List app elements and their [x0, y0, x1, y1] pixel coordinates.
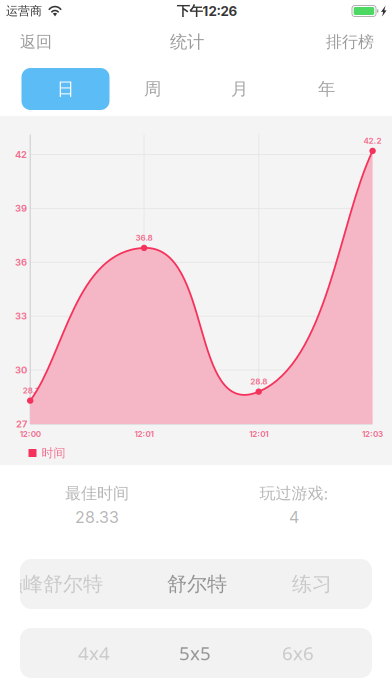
staticText: 运营商	[6, 3, 42, 18]
staticText: 12:01	[249, 429, 268, 439]
staticText: 4	[289, 507, 299, 527]
staticText: 42	[15, 149, 27, 160]
button[interactable]: 4x4	[20, 628, 372, 678]
staticText: 36.8	[136, 233, 153, 243]
staticText: 周	[144, 78, 161, 100]
staticText: 28.33	[75, 507, 119, 527]
button[interactable]: 返回	[0, 22, 64, 62]
staticText: 42.2	[364, 136, 382, 146]
staticText: 30	[15, 364, 27, 376]
staticText: 日	[57, 78, 74, 100]
staticText: 27	[16, 418, 27, 430]
staticText: 28.8	[250, 377, 267, 386]
button[interactable]: 年	[283, 62, 370, 116]
staticText: 12:03	[362, 429, 383, 439]
button[interactable]: 日	[22, 62, 109, 116]
staticText: 玩过游戏:	[259, 483, 328, 503]
staticText: 12:00	[20, 429, 41, 439]
staticText: 33	[15, 311, 27, 322]
staticText: 下午12:26	[176, 3, 237, 19]
staticText: 12:01	[135, 429, 154, 439]
button[interactable]: 排行榜	[314, 22, 392, 62]
staticText: 4x4	[78, 640, 110, 666]
staticText: 月	[231, 78, 248, 100]
staticText: 统计	[170, 31, 204, 53]
staticText: 年	[318, 78, 335, 100]
staticText: 排行榜	[326, 32, 374, 52]
staticText: 舒尔特	[167, 571, 227, 597]
staticText: 28.3	[23, 386, 40, 395]
staticText: 最佳时间	[65, 483, 129, 503]
button[interactable]: 月	[196, 62, 283, 116]
button[interactable]: 巅峰舒尔特	[20, 559, 372, 609]
staticText: 时间	[41, 445, 65, 460]
staticText: 返回	[20, 32, 52, 52]
staticText: 巅峰舒尔特	[3, 571, 103, 597]
staticText: 36	[15, 257, 27, 268]
staticText: 6x6	[282, 640, 314, 666]
staticText: 5x5	[179, 640, 211, 666]
button[interactable]: 周	[109, 62, 196, 116]
staticText: 练习	[292, 571, 332, 597]
staticText: 39	[15, 203, 27, 214]
